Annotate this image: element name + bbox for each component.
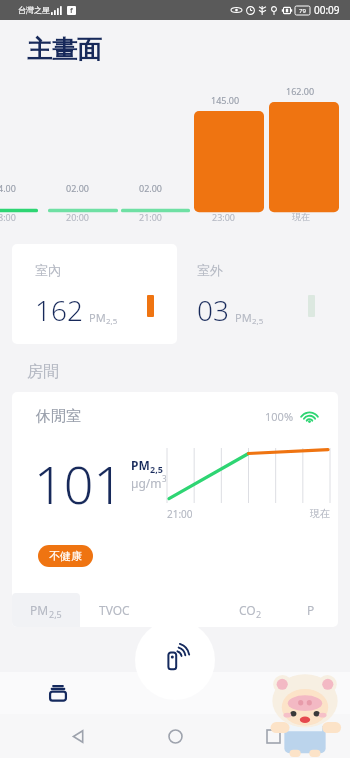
button[interactable]: Add device: [135, 620, 215, 700]
staticText: µg/m: [131, 475, 162, 491]
button[interactable]: Home: [233, 672, 350, 714]
staticText: PM: [30, 602, 49, 618]
staticText: f: [70, 6, 73, 15]
staticText: 房間: [27, 362, 59, 382]
staticText: 145.00: [211, 94, 240, 106]
staticText: 休閒室: [36, 407, 81, 426]
staticText: 02.00: [139, 182, 163, 194]
staticText: 現在: [310, 507, 330, 520]
staticText: 23:00: [212, 211, 236, 223]
staticText: 21:00: [139, 211, 163, 223]
staticText: TVOC: [99, 602, 130, 618]
staticText: 台灣之星: [18, 5, 50, 15]
button[interactable]: P: [284, 593, 338, 627]
button[interactable]: 室外: [197, 244, 350, 344]
other: WiFi signal: [301, 408, 318, 425]
button[interactable]: Home: [155, 716, 195, 756]
staticText: 00:09: [314, 3, 340, 17]
staticText: 79: [299, 7, 306, 15]
staticText: 室外: [197, 262, 223, 278]
button[interactable]: TVOC: [80, 593, 148, 627]
staticText: PM: [131, 457, 150, 473]
button[interactable]: 休閒室: [12, 392, 338, 440]
staticText: 162: [35, 291, 83, 329]
staticText: PM: [89, 310, 106, 325]
button[interactable]: Recents: [253, 716, 293, 756]
staticText: 主畫面: [27, 34, 102, 65]
button[interactable]: Back: [58, 716, 98, 756]
staticText: 現在: [292, 211, 310, 222]
staticText: 室內: [35, 262, 61, 278]
staticText: 02.00: [66, 182, 90, 194]
staticText: 不健康: [49, 549, 82, 563]
staticText: PM: [235, 310, 252, 325]
staticText: 8:00: [0, 211, 16, 223]
staticText: 20:00: [66, 211, 90, 223]
staticText: 21:00: [167, 507, 193, 521]
staticText: 101: [34, 448, 124, 519]
staticText: CO: [239, 602, 256, 618]
staticText: 100%: [265, 409, 294, 424]
button[interactable]: 室內: [12, 244, 177, 344]
staticText: 2,5: [252, 316, 264, 327]
staticText: P: [307, 602, 315, 618]
staticText: 3: [162, 473, 167, 484]
staticText: 4.00: [0, 182, 16, 194]
button[interactable]: CO: [216, 593, 284, 627]
staticText: 2,5: [106, 316, 118, 327]
staticText: 2: [256, 608, 262, 620]
staticText: 2,5: [49, 608, 62, 620]
button[interactable]: Devices: [0, 672, 116, 714]
staticText: 03: [197, 291, 229, 329]
staticText: 2,5: [150, 463, 163, 475]
button[interactable]: PM: [12, 593, 80, 627]
staticText: 162.00: [286, 85, 315, 97]
button[interactable]: 不健康: [38, 545, 93, 567]
